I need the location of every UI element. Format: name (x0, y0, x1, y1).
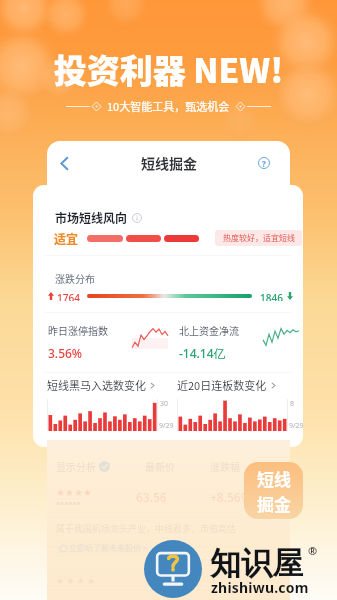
button[interactable]: Back (51, 150, 77, 176)
staticText: 10大智能工具，甄选机会 (107, 98, 230, 114)
staticText: -14.14亿 (179, 345, 226, 359)
staticText: 掘金 (257, 491, 291, 516)
staticText: 短线 (257, 466, 291, 491)
staticText: 昨日涨停指数 (48, 323, 108, 337)
staticText: 适宜 (54, 230, 79, 246)
staticText: 属于我国机场龙头产业，中线看多，市值高估 (56, 522, 237, 535)
staticText: 9/29 (289, 421, 303, 431)
button[interactable]: 短线 (244, 462, 303, 519)
staticText: +8.56% (210, 489, 251, 505)
staticText: 热度较好，适宜短线 (223, 232, 295, 244)
staticText: 显示分析 (56, 459, 96, 473)
staticText: 涨跌分布 (55, 271, 95, 285)
staticText: 9/29 (159, 421, 174, 431)
staticText: ★★★★ (56, 487, 92, 499)
staticText: zhishiwu.com (211, 578, 309, 597)
button[interactable]: Help (252, 151, 276, 175)
staticText: 1764 (57, 291, 80, 301)
staticText: 主力 (261, 459, 281, 473)
staticText: 短线掘金 (141, 153, 197, 173)
staticText: 立即听了解未来股价 > (69, 542, 148, 554)
staticText: ® (308, 543, 318, 558)
staticText: 北上资金净流 (179, 323, 239, 337)
staticText: 8 (290, 399, 295, 409)
staticText: 30 (160, 399, 169, 409)
staticText: ▪▪▪▪▪▪ (56, 499, 81, 506)
button[interactable]: 近20日连板数变化 (177, 377, 303, 431)
staticText: 63.56 (136, 489, 167, 505)
staticText: 投资利器 NEW! (0, 45, 337, 93)
staticText: 近20日连板数变化 (177, 377, 267, 393)
staticText: 3.56% (48, 345, 83, 359)
staticText: 知识屋 (210, 544, 303, 583)
staticText: 短线黑马入选数变化 (47, 377, 146, 393)
staticText: ? (262, 158, 266, 169)
button[interactable]: 短线黑马入选数变化 (47, 377, 175, 431)
staticText: 市场短线风向 (55, 209, 128, 226)
staticText: 最新价 (145, 459, 175, 473)
staticText: 1846 (260, 291, 283, 301)
staticText: 涨跌幅 (210, 459, 240, 473)
